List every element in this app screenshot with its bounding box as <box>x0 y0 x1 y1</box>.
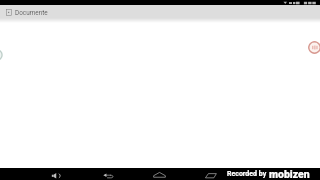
staticText: Documente <box>15 9 48 17</box>
button[interactable]: Floating shortcut <box>0 49 3 61</box>
staticText: Recorded by <box>227 170 267 178</box>
button[interactable]: Open navigation <box>0 5 320 18</box>
button[interactable]: Home <box>153 168 166 180</box>
button[interactable]: Recent apps <box>204 168 217 180</box>
button[interactable]: Recording widget <box>308 41 320 54</box>
other: Open navigation <box>6 9 12 16</box>
button[interactable]: Back <box>101 168 114 180</box>
staticText: mobizen <box>269 168 310 180</box>
button[interactable]: Volume <box>50 168 63 180</box>
